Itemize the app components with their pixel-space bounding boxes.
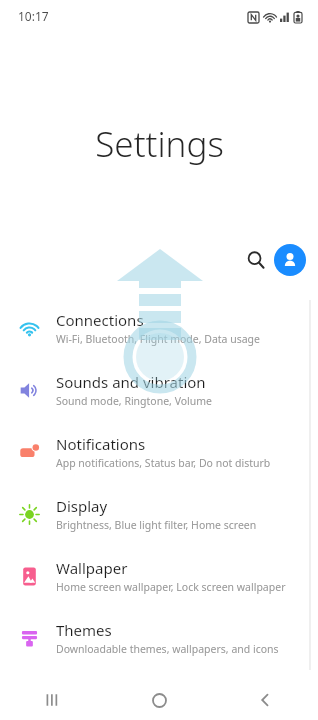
staticText: Connections [56,310,144,330]
button[interactable]: Notifications [0,421,318,483]
button[interactable]: Home [106,680,212,720]
button[interactable]: Account [274,244,306,276]
staticText: Wallpaper [56,558,128,578]
staticText: Sounds and vibration [56,372,206,392]
staticText: Display [56,496,108,516]
staticText: App notifications, Status bar, Do not di… [56,456,271,470]
staticText: Wi-Fi, Bluetooth, Flight mode, Data usag… [56,332,261,346]
button[interactable]: Wallpaper [0,545,318,607]
button[interactable]: Recents [0,680,106,720]
staticText: Home screen wallpaper, Lock screen wallp… [56,580,286,594]
staticText: Sound mode, Ringtone, Volume [56,394,213,408]
button[interactable]: Back [212,680,318,720]
staticText: Notifications [56,434,146,454]
staticText: Themes [56,620,112,640]
staticText: Downloadable themes, wallpapers, and ico… [56,642,279,656]
button[interactable]: Display [0,483,318,545]
staticText: Settings [95,120,224,168]
staticText: Brightness, Blue light filter, Home scre… [56,518,257,532]
button[interactable]: Connections [0,297,318,359]
button[interactable]: Sounds and vibration [0,359,318,421]
button[interactable]: Themes [0,607,318,669]
staticText: 10:17 [18,8,49,24]
button[interactable]: Search [238,242,274,278]
